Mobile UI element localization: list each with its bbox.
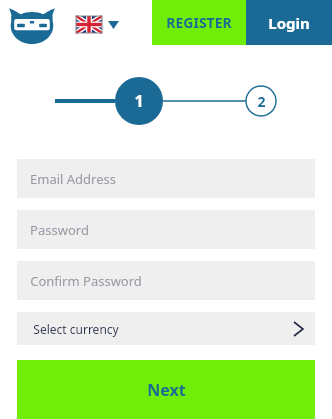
staticText: 1 (134, 90, 144, 112)
staticText: Select currency (33, 321, 119, 337)
button[interactable]: Step 1 (115, 77, 163, 125)
button[interactable]: REGISTER (152, 0, 246, 45)
button[interactable]: Home (4, 2, 60, 46)
button[interactable]: Next (17, 360, 315, 419)
staticText: REGISTER (166, 13, 232, 32)
staticText: 2 (257, 92, 266, 111)
button[interactable]: Confirm Password (17, 261, 315, 300)
button[interactable]: Select currency (17, 312, 315, 345)
button[interactable]: Step 2 (246, 86, 276, 116)
staticText: Confirm Password (30, 272, 142, 290)
staticText: Email Address (30, 170, 116, 188)
button[interactable]: Email Address (17, 159, 315, 198)
staticText: Next (147, 379, 186, 401)
button[interactable]: Select language (74, 14, 121, 35)
button[interactable]: Login (246, 0, 332, 45)
staticText: Password (30, 221, 89, 239)
staticText: Login (268, 13, 310, 33)
button[interactable]: Password (17, 210, 315, 249)
